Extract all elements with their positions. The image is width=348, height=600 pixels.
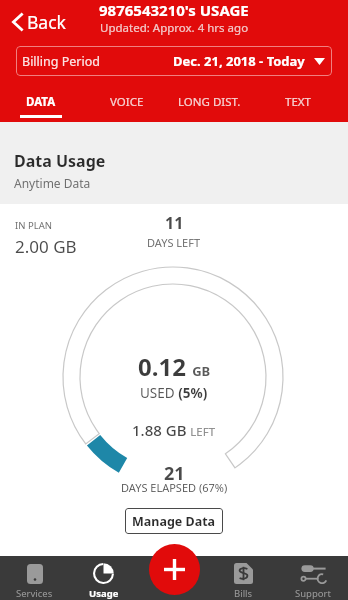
staticText: 11 <box>165 212 184 234</box>
button[interactable]: Services <box>0 557 69 600</box>
staticText: 0.12 GB <box>138 350 211 383</box>
staticText: 2.00 GB <box>15 235 77 258</box>
staticText: IN PLAN <box>15 219 52 232</box>
staticText: Back <box>27 10 66 34</box>
staticText: 1.88 GB LEFT <box>132 420 216 440</box>
button[interactable]: Manage Data <box>125 508 223 534</box>
staticText: VOICE <box>110 94 144 110</box>
staticText: 9876543210's USAGE <box>99 0 249 20</box>
button[interactable]: Back <box>9 8 72 36</box>
staticText: Support <box>295 587 331 600</box>
staticText: Dec. 21, 2018 - Today <box>173 52 305 70</box>
button[interactable]: TEXT <box>248 94 348 124</box>
staticText: Anytime Data <box>14 175 91 191</box>
staticText: Manage Data <box>132 513 216 530</box>
staticText: Data Usage <box>14 150 106 172</box>
button[interactable]: VOICE <box>82 94 171 124</box>
staticText: USED (5%) <box>140 384 208 402</box>
staticText: Billing Period <box>22 53 100 70</box>
staticText: 21 <box>164 461 185 486</box>
staticText: TEXT <box>285 94 311 110</box>
staticText: DAYS LEFT <box>147 235 201 250</box>
button[interactable]: LONG DIST. <box>171 94 248 124</box>
staticText: Updated: Approx. 4 hrs ago <box>100 20 249 36</box>
button[interactable]: Billing Period <box>16 46 332 76</box>
staticText: DATA <box>26 94 56 110</box>
staticText: DAYS ELAPSED (67%) <box>121 480 228 495</box>
staticText: Usage <box>89 587 119 600</box>
staticText: Services <box>16 587 53 600</box>
button[interactable]: Usage <box>69 557 138 600</box>
button[interactable]: Add <box>149 544 200 595</box>
staticText: LONG DIST. <box>178 94 241 110</box>
staticText: Bills <box>234 587 253 600</box>
button[interactable]: Bills <box>208 557 278 600</box>
button[interactable]: DATA <box>0 94 82 124</box>
button[interactable]: Support <box>278 557 348 600</box>
